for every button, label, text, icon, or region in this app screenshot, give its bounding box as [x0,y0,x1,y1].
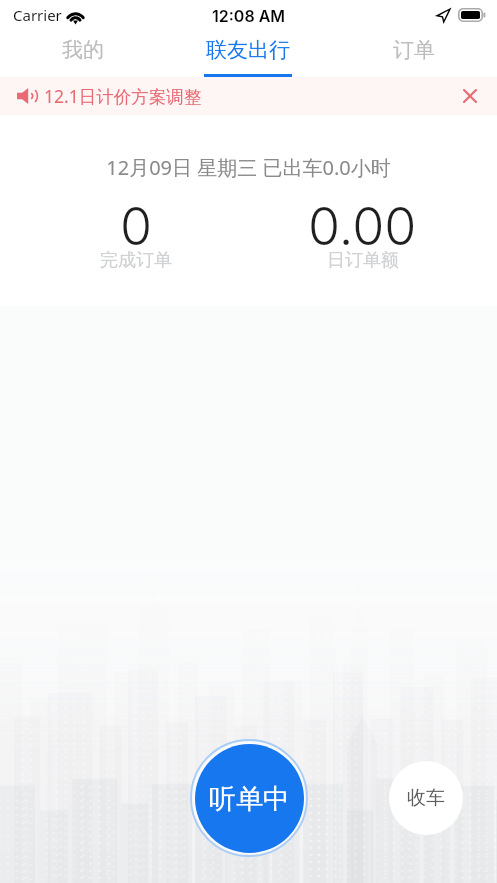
staticText: 联友出行 [206,37,290,63]
button[interactable]: Close banner [456,82,484,110]
staticText: 订单 [393,37,435,63]
staticText: Carrier [13,5,62,25]
button[interactable]: 听单中 [195,744,304,853]
button[interactable]: 我的 [0,30,165,77]
staticText: 我的 [62,37,104,63]
staticText: 收车 [407,786,445,810]
button[interactable]: 收车 [389,761,463,835]
button[interactable]: 联友出行 [165,30,331,77]
button[interactable]: 订单 [331,30,497,77]
staticText: 12.1日计价方案调整 [44,84,202,108]
staticText: 日订单额 [327,249,399,272]
staticText: 听单中 [209,782,290,816]
staticText: 完成订单 [100,249,172,272]
staticText: 0.00 [308,195,417,258]
staticText: 12:08 AM [212,6,286,25]
staticText: 12月09日 星期三 已出车0.0小时 [0,154,497,181]
other: Location [437,9,450,22]
staticText: 0 [120,195,153,258]
